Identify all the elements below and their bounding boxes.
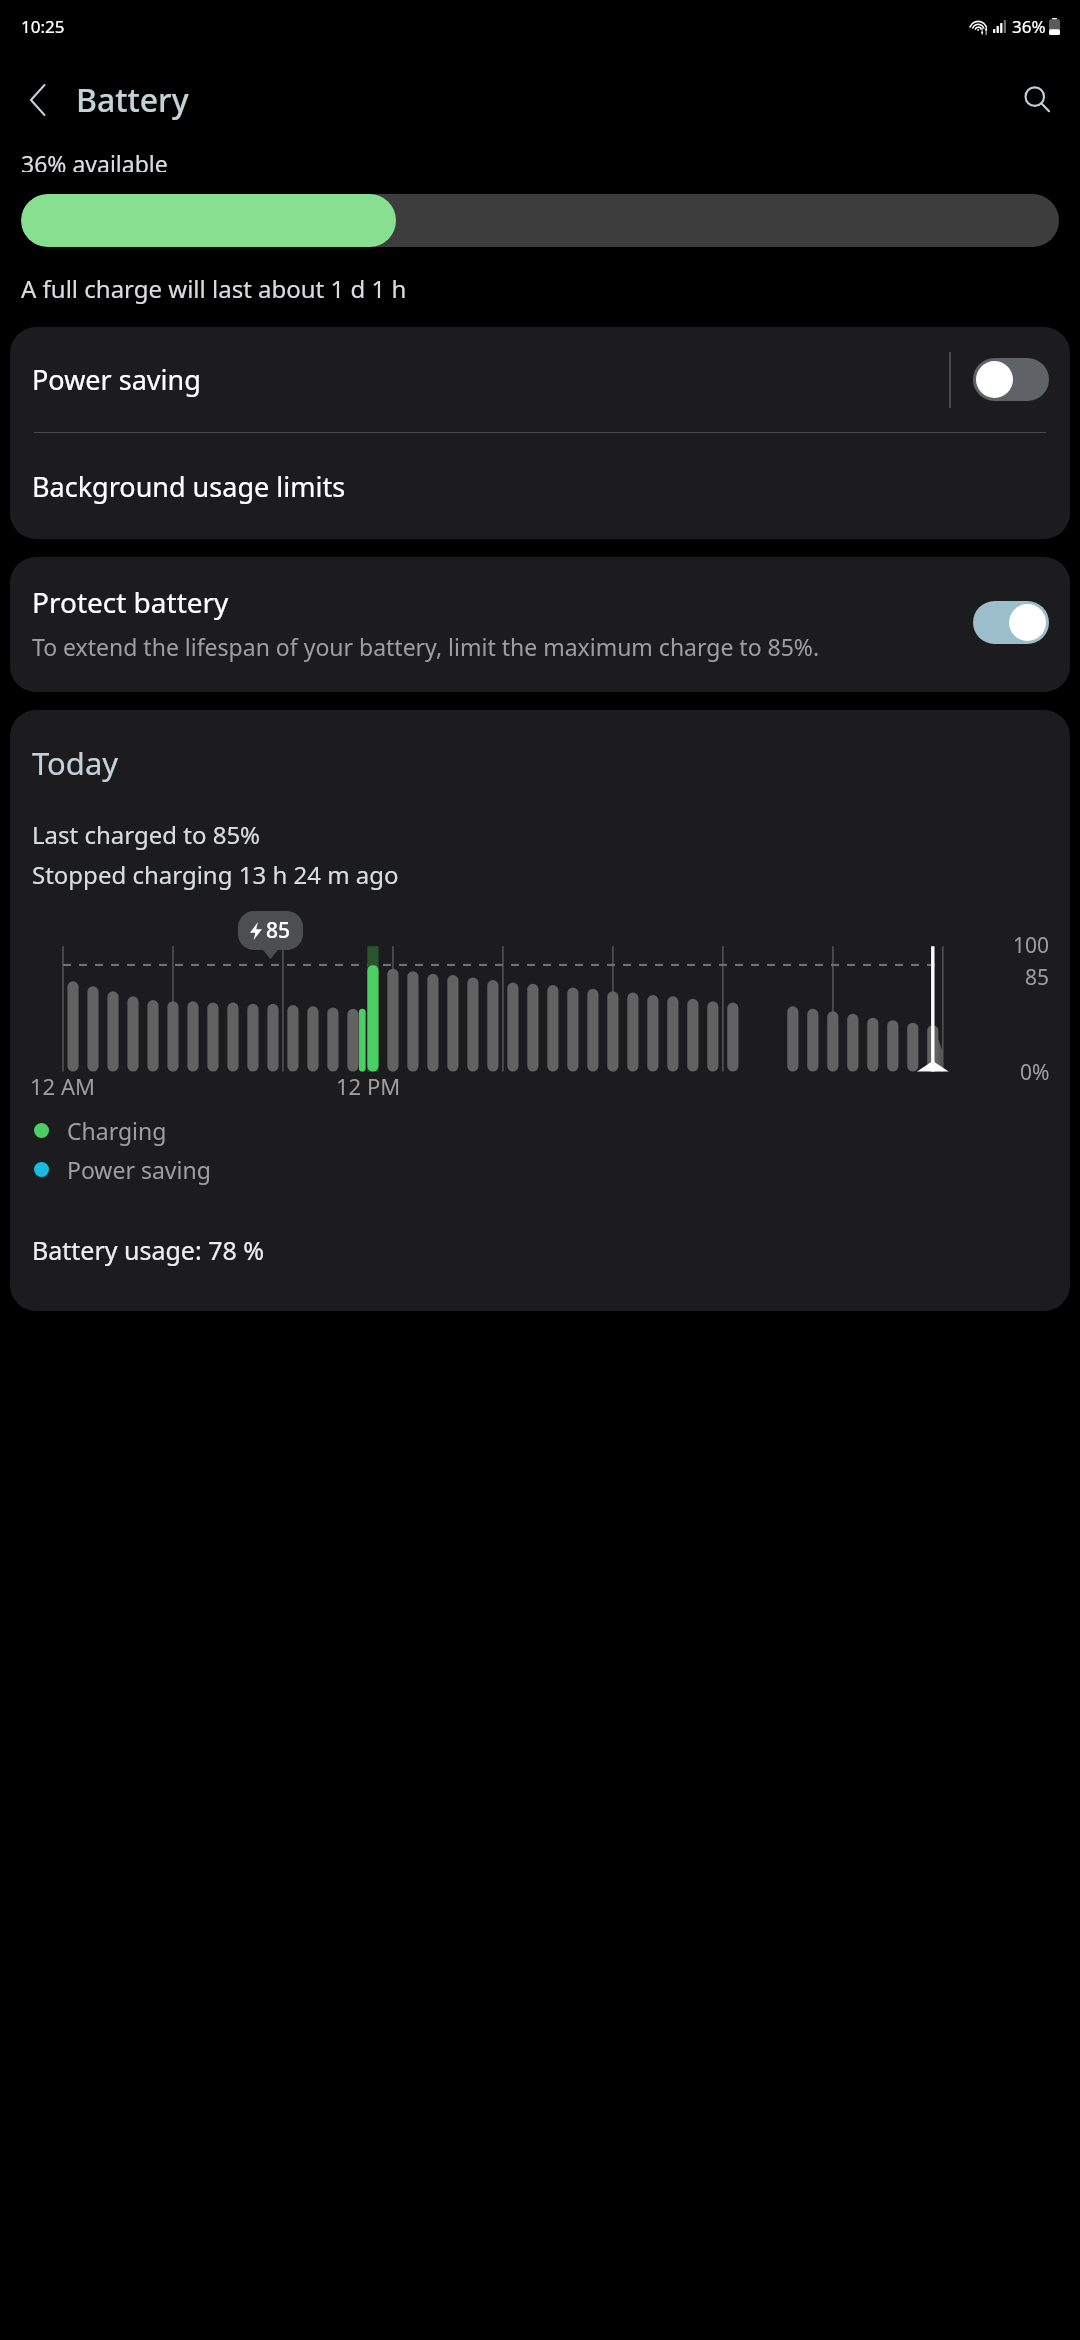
staticText: 85 xyxy=(266,916,291,945)
button[interactable]: Search xyxy=(1008,71,1066,129)
staticText: To extend the lifespan of your battery, … xyxy=(32,631,820,662)
button[interactable]: Power saving xyxy=(10,327,1070,432)
staticText: 12 PM xyxy=(336,1071,401,1101)
staticText: Power saving xyxy=(67,1154,211,1185)
button[interactable]: Background usage limits xyxy=(10,433,1070,539)
staticText: Stopped charging 13 h 24 m ago xyxy=(32,858,399,891)
button[interactable]: Protect battery xyxy=(10,557,1070,692)
staticText: 85 xyxy=(1025,963,1050,992)
staticText: 12 AM xyxy=(30,1071,95,1101)
staticText: 10:25 xyxy=(21,15,65,38)
staticText: Battery xyxy=(76,78,189,122)
staticText: 36% xyxy=(1012,15,1046,38)
staticText: Battery usage: 78 % xyxy=(32,1233,265,1267)
staticText: Power saving xyxy=(32,361,949,398)
staticText: A full charge will last about 1 d 1 h xyxy=(21,272,407,305)
staticText: Protect battery xyxy=(32,583,229,621)
button[interactable]: Protect battery toggle xyxy=(973,601,1049,644)
button[interactable]: Back xyxy=(10,71,68,129)
staticText: Charging xyxy=(67,1115,167,1146)
staticText: Today xyxy=(32,742,119,784)
staticText: 36% available xyxy=(21,148,168,172)
staticText: 0% xyxy=(1020,1058,1050,1087)
staticText: Background usage limits xyxy=(32,468,346,505)
button[interactable]: Power saving toggle xyxy=(973,358,1049,401)
staticText: 100 xyxy=(1013,931,1050,960)
staticText: Last charged to 85% xyxy=(32,818,261,851)
